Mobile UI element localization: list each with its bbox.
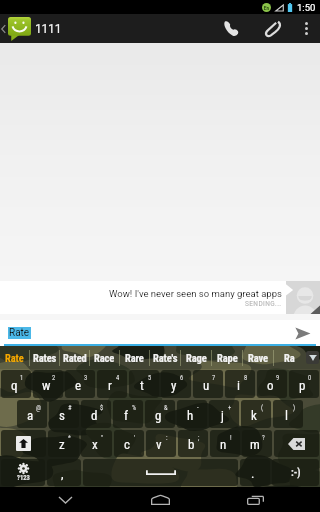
button[interactable]: w (33, 370, 63, 398)
button[interactable]: a (17, 400, 47, 428)
staticText: e (75, 378, 82, 393)
staticText: x (92, 437, 98, 452)
staticText: Rate's (153, 352, 178, 364)
staticText: & (164, 404, 168, 412)
button[interactable]: y (161, 370, 191, 398)
button[interactable]: i (225, 370, 255, 398)
staticText: Race (94, 352, 115, 364)
button[interactable]: Settings (1, 459, 45, 486)
staticText: 4 (116, 374, 120, 382)
button[interactable]: e (65, 370, 95, 398)
button[interactable]: q (1, 370, 31, 398)
staticText: v (156, 437, 162, 452)
button[interactable]: Rate's (150, 346, 180, 369)
staticText: Rate (9, 327, 30, 339)
staticText: * (68, 434, 71, 442)
staticText: % (132, 404, 137, 412)
button[interactable]: t (129, 370, 159, 398)
button[interactable]: More options (294, 14, 318, 43)
staticText: ? (262, 434, 265, 442)
button[interactable]: j (209, 400, 239, 428)
staticText: " (101, 434, 104, 442)
button[interactable]: Rave (243, 346, 273, 369)
staticText: Rage (186, 352, 207, 364)
button[interactable]: . (240, 459, 270, 486)
button[interactable]: c (114, 430, 144, 457)
staticText: Rave (248, 352, 268, 364)
button[interactable]: d (81, 400, 111, 428)
button[interactable]: z (48, 430, 79, 457)
staticText: Wow! I've never seen so many great apps (109, 288, 282, 299)
button[interactable]: m (242, 430, 272, 457)
staticText: 1:50 (297, 2, 316, 13)
button[interactable]: Space (83, 459, 238, 486)
button[interactable]: Emoji (272, 459, 319, 486)
button[interactable]: Navigate up (0, 14, 31, 43)
staticText: Rape (217, 352, 238, 364)
staticText: 2 (52, 374, 56, 382)
staticText: b (188, 437, 195, 452)
button[interactable]: Rape (212, 346, 242, 369)
staticText: 3 (84, 374, 88, 382)
button[interactable]: Attach (252, 14, 294, 43)
button[interactable]: s (49, 400, 79, 428)
button[interactable]: x (81, 430, 112, 457)
button[interactable]: Rates (30, 346, 59, 369)
button[interactable]: Shift (1, 430, 46, 457)
button[interactable]: h (177, 400, 207, 428)
button[interactable]: Back (35, 487, 95, 512)
button[interactable]: v (146, 430, 176, 457)
button[interactable]: Backspace (274, 430, 319, 457)
button[interactable]: Call (210, 14, 252, 43)
button[interactable]: Send (284, 320, 320, 346)
button[interactable]: l (273, 400, 303, 428)
staticText: m (250, 437, 260, 452)
staticText: 6 (180, 374, 184, 382)
staticText: 8 (244, 374, 248, 382)
staticText: 1 (20, 374, 24, 382)
button[interactable]: Recents (225, 487, 285, 512)
staticText: y (171, 378, 177, 393)
other: Space (146, 468, 176, 477)
staticText: :-) (291, 467, 301, 479)
staticText: En (264, 5, 269, 11)
button[interactable]: Rage (181, 346, 211, 369)
button[interactable]: Ra (274, 346, 304, 369)
button[interactable]: , (47, 459, 81, 486)
other: Backspace (288, 438, 305, 450)
staticText: d (91, 408, 98, 423)
button[interactable]: u (193, 370, 223, 398)
staticText: , (61, 466, 64, 481)
button[interactable]: g (145, 400, 175, 428)
button[interactable]: Home (130, 487, 190, 512)
button[interactable]: p (289, 370, 319, 398)
staticText: Rate (5, 352, 24, 364)
button[interactable]: o (257, 370, 287, 398)
button[interactable]: Rate (0, 346, 29, 369)
staticText: Rated (63, 352, 87, 364)
staticText: l (285, 408, 288, 423)
button[interactable]: k (241, 400, 271, 428)
button[interactable]: b (178, 430, 208, 457)
staticText: Ra (284, 352, 295, 364)
button[interactable]: Rated (60, 346, 89, 369)
button[interactable]: More suggestions (304, 346, 320, 369)
staticText: f (124, 408, 129, 423)
button[interactable]: f (113, 400, 143, 428)
staticText: h (187, 408, 194, 423)
button[interactable]: Rare (120, 346, 149, 369)
button[interactable]: n (210, 430, 240, 457)
staticText: k (251, 408, 257, 423)
staticText: ' (134, 434, 136, 442)
staticText: ! (230, 434, 232, 442)
staticText: a (27, 408, 34, 423)
staticText: $ (100, 404, 104, 412)
staticText: 1111 (35, 22, 62, 36)
staticText: q (11, 378, 18, 393)
button[interactable]: r (97, 370, 127, 398)
staticText: p (299, 378, 306, 393)
staticText: Rare (125, 352, 144, 364)
button[interactable]: Race (90, 346, 119, 369)
staticText: o (267, 378, 274, 393)
other: Emoji (291, 467, 301, 479)
